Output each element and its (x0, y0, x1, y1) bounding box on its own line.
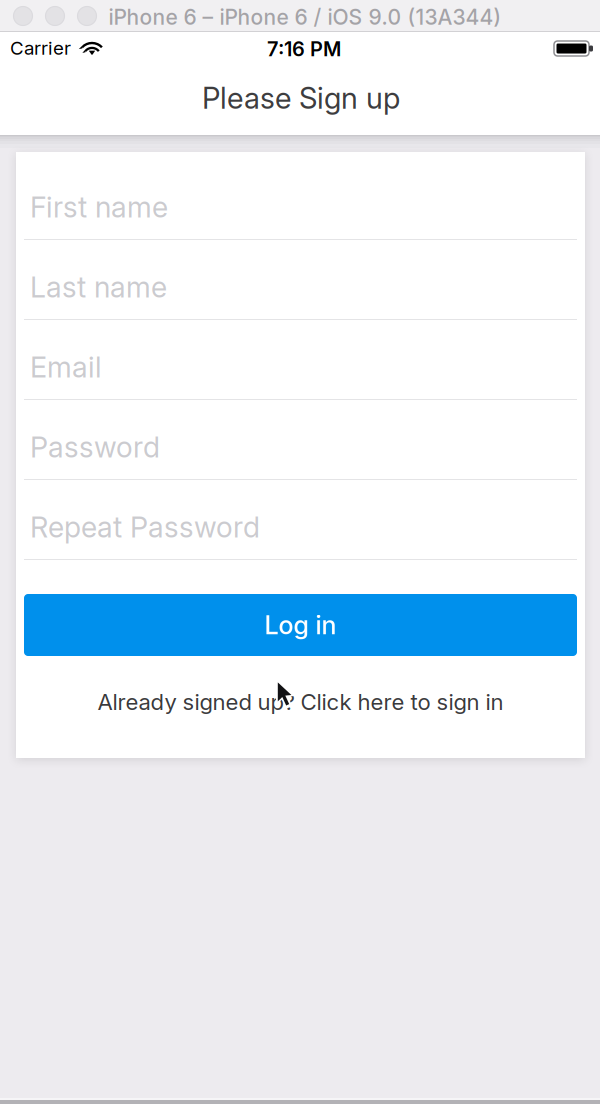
staticText: 7:16 PM (267, 37, 341, 61)
staticText: Carrier (10, 37, 71, 59)
button[interactable]: Last name (16, 240, 585, 320)
staticText: Please Sign up (202, 80, 400, 116)
staticText: Already signed up? Click here to sign in (97, 688, 503, 715)
staticText: Log in (264, 610, 336, 640)
button[interactable]: Repeat Password (16, 480, 585, 560)
button[interactable]: Email (16, 320, 585, 400)
button[interactable]: Already signed up? Click here to sign in (24, 682, 577, 722)
staticText: First name (30, 190, 168, 224)
staticText: Last name (30, 270, 167, 304)
staticText: Email (30, 350, 102, 384)
staticText: Password (30, 430, 160, 464)
button[interactable]: Password (16, 400, 585, 480)
button[interactable]: Log in (24, 594, 577, 656)
staticText: iPhone 6 – iPhone 6 / iOS 9.0 (13A344) (108, 4, 501, 30)
staticText: Repeat Password (30, 510, 260, 544)
button[interactable]: First name (16, 160, 585, 240)
